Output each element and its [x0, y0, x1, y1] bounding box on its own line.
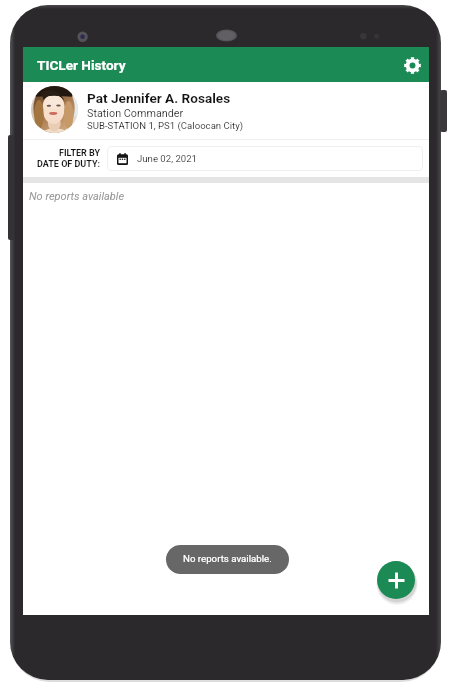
staticText: Station Commander	[87, 107, 184, 120]
staticText: No reports available.	[183, 553, 272, 564]
staticText: June 02, 2021	[137, 153, 197, 164]
staticText: Pat Jennifer A. Rosales	[87, 90, 231, 106]
staticText: TICLer History	[37, 57, 126, 73]
button[interactable]: Settings	[398, 51, 426, 79]
button[interactable]: No reports available.	[166, 545, 289, 574]
button[interactable]: Pat Jennifer A. Rosales	[23, 82, 429, 139]
button[interactable]: June 02, 2021	[107, 146, 423, 171]
staticText: SUB-STATION 1, PS1 (Caloocan City)	[87, 120, 244, 131]
staticText: DATE OF DUTY:	[37, 159, 101, 170]
button[interactable]: Add report	[377, 561, 415, 599]
staticText: No reports available	[29, 190, 125, 203]
staticText: FILTER BY	[59, 148, 101, 159]
